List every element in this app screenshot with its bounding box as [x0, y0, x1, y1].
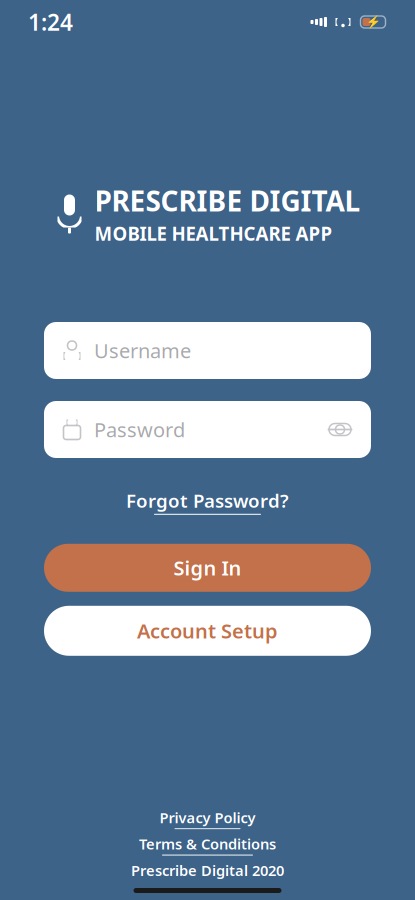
button[interactable]: Forgot Password?	[44, 484, 371, 519]
button[interactable]: Privacy Policy	[159, 808, 255, 829]
staticText: Prescribe Digital 2020	[131, 860, 284, 880]
staticText: MOBILE HEALTHCARE APP	[94, 221, 332, 246]
staticText: Password	[94, 416, 185, 443]
staticText: Username	[94, 337, 191, 364]
button[interactable]: Sign In	[44, 544, 371, 592]
staticText: ⚡	[365, 15, 380, 29]
staticText: Privacy Policy	[159, 808, 255, 827]
staticText: PRESCRIBE DIGITAL	[94, 182, 360, 219]
button[interactable]: Account Setup	[44, 606, 371, 656]
staticText: 1:24	[28, 7, 73, 37]
staticText: Forgot Password?	[126, 488, 289, 513]
staticText: Account Setup	[137, 617, 278, 644]
button[interactable]: Terms & Conditions	[139, 834, 276, 855]
staticText: Sign In	[173, 554, 241, 581]
staticText: Terms & Conditions	[139, 834, 276, 854]
